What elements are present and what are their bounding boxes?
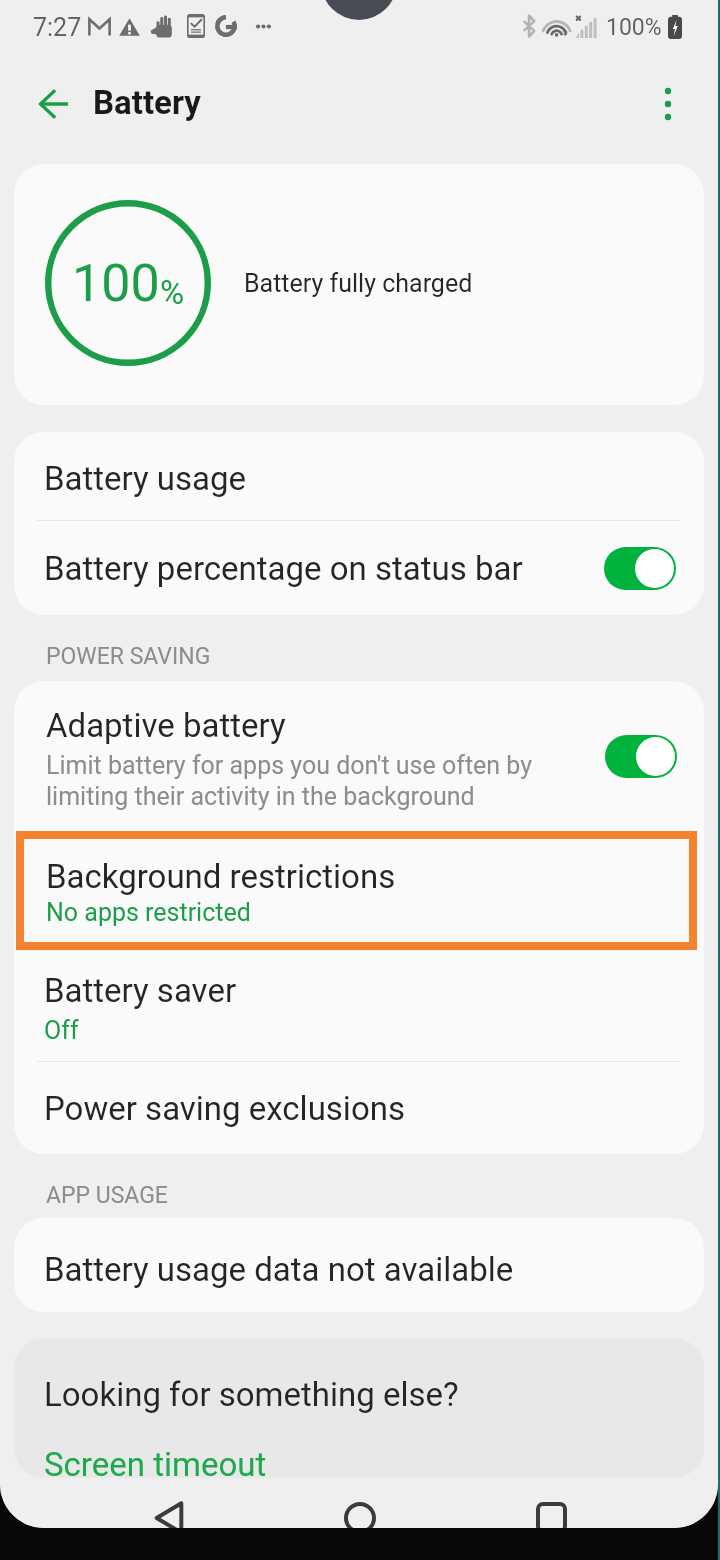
- staticText: Off: [44, 1016, 79, 1045]
- button[interactable]: Screen timeout: [44, 1445, 267, 1478]
- button[interactable]: Battery saver: [14, 950, 704, 1061]
- button[interactable]: Battery usage: [14, 432, 704, 520]
- button[interactable]: Battery percentage on status bar: [14, 521, 704, 615]
- staticText: Battery: [93, 83, 201, 122]
- button[interactable]: Toggle on: [605, 735, 677, 778]
- staticText: Adaptive battery: [46, 706, 286, 745]
- staticText: 7:27: [33, 13, 82, 42]
- staticText: POWER SAVING: [46, 643, 211, 670]
- staticText: 100%: [606, 14, 662, 41]
- staticText: Battery usage: [44, 459, 247, 498]
- button[interactable]: Battery usage data not available: [14, 1218, 704, 1312]
- staticText: Power saving exclusions: [44, 1089, 405, 1128]
- staticText: Battery percentage on status bar: [44, 549, 523, 588]
- staticText: Battery fully charged: [244, 269, 473, 298]
- button[interactable]: Background restrictions: [24, 839, 689, 942]
- button[interactable]: Toggle on: [604, 547, 676, 590]
- button[interactable]: Home: [320, 1482, 400, 1528]
- button[interactable]: Back: [128, 1482, 208, 1528]
- staticText: 100: [72, 253, 160, 314]
- button[interactable]: Recent apps: [511, 1482, 591, 1528]
- staticText: limiting their activity in the backgroun…: [46, 782, 475, 811]
- button[interactable]: Navigate up: [24, 74, 84, 134]
- staticText: Battery usage data not available: [44, 1250, 514, 1289]
- staticText: %: [160, 273, 185, 312]
- staticText: Looking for something else?: [44, 1375, 459, 1414]
- button[interactable]: Adaptive battery: [14, 681, 704, 831]
- staticText: No apps restricted: [46, 898, 251, 927]
- button[interactable]: More options: [634, 74, 694, 134]
- staticText: APP USAGE: [46, 1182, 168, 1209]
- staticText: Limit battery for apps you don't use oft…: [46, 751, 533, 780]
- staticText: Background restrictions: [46, 857, 396, 896]
- staticText: Battery saver: [44, 971, 237, 1010]
- button[interactable]: Power saving exclusions: [14, 1062, 704, 1154]
